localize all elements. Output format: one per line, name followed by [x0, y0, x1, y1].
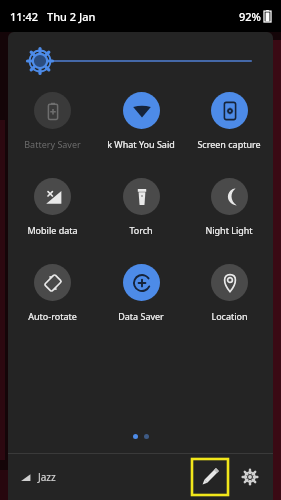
staticText: 11:42 [10, 9, 39, 24]
button[interactable]: Screen capture [185, 90, 273, 152]
button[interactable]: Edit [191, 458, 229, 496]
staticText: Battery Saver [24, 138, 81, 150]
staticText: Jazz [38, 470, 56, 484]
button[interactable]: Torch [97, 176, 185, 238]
staticText: Auto-rotate [28, 310, 77, 322]
staticText: Torch [129, 224, 153, 236]
button[interactable]: Data Saver [97, 262, 185, 324]
button[interactable]: Jazz [18, 464, 58, 490]
staticText: 92% [239, 9, 261, 24]
button[interactable]: Mobile data [8, 176, 97, 238]
staticText: Location [211, 310, 248, 322]
staticText: k What You Said [107, 138, 175, 150]
button[interactable]: k What You Said [97, 90, 185, 152]
staticText: Mobile data [27, 224, 78, 236]
staticText: Data Saver [118, 310, 164, 322]
button[interactable]: Night Light [185, 176, 273, 238]
button[interactable]: Auto-rotate [8, 262, 97, 324]
staticText: Thu 2 Jan [47, 9, 96, 24]
button[interactable]: Location [185, 262, 273, 324]
staticText: Night Light [205, 224, 253, 236]
button[interactable]: Battery Saver [8, 90, 97, 152]
staticText: Screen capture [197, 138, 261, 150]
button[interactable]: Brightness [8, 32, 273, 90]
button[interactable]: Settings [235, 462, 265, 492]
